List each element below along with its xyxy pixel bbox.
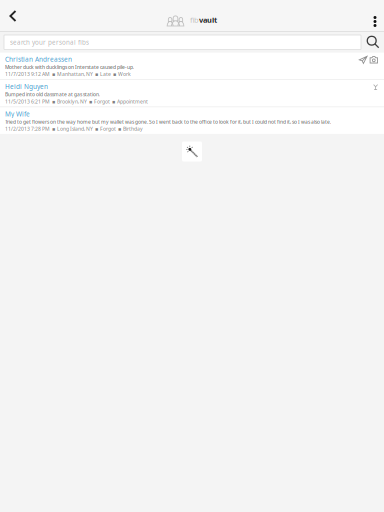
staticText: search your personal fibs (10, 38, 89, 46)
button[interactable]: Back (3, 0, 23, 32)
staticText: fib (190, 15, 199, 25)
button[interactable]: Heidi Nguyen (0, 80, 384, 107)
staticText: 11/7/2013 9:12 AM ▪ Manhattan, NY ▪ Late… (5, 71, 131, 77)
staticText: Bumped into old classmate at gas station… (5, 91, 100, 98)
staticText: Christian Andreassen (5, 55, 72, 64)
staticText: 11/2/2013 7:28 PM ▪ Long Island, NY ▪ Fo… (5, 125, 143, 132)
button[interactable]: More options (364, 10, 384, 32)
staticText: 11/5/2013 6:21 PM ▪ Brooklyn, NY ▪ Forgo… (5, 98, 148, 105)
button[interactable]: Search (364, 34, 382, 50)
staticText: Tried to get flowers on the way home but… (5, 118, 331, 125)
staticText: Heidi Nguyen (5, 82, 48, 91)
button[interactable]: search your personal fibs (4, 35, 361, 49)
staticText: vault (199, 15, 217, 25)
staticText: Mother duck with ducklings on Interstate… (5, 64, 134, 70)
button[interactable]: Christian Andreassen (0, 53, 384, 79)
button[interactable]: My Wife (0, 107, 384, 134)
button[interactable]: Compose fib (182, 141, 202, 161)
staticText: My Wife (5, 110, 30, 118)
